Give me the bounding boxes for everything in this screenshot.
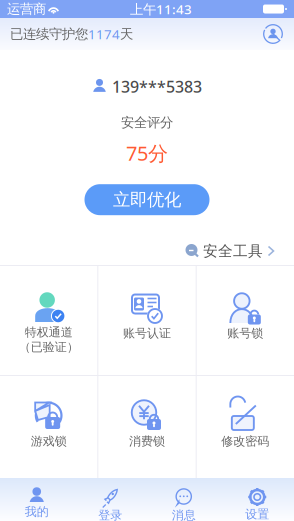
- staticText: （已验证）: [19, 340, 79, 354]
- staticText: 1174: [88, 25, 120, 43]
- staticText: 账号锁: [227, 326, 263, 341]
- button[interactable]: 账号认证: [98, 266, 196, 375]
- button[interactable]: 我的: [0, 478, 73, 521]
- button[interactable]: 消费锁: [98, 376, 196, 478]
- button[interactable]: 特权通道: [0, 266, 97, 375]
- staticText: 天: [120, 26, 133, 42]
- staticText: 安全评分: [121, 114, 173, 131]
- button[interactable]: 安全工具: [0, 242, 294, 265]
- staticText: 已连续守护您: [10, 26, 88, 42]
- staticText: 消息: [172, 508, 196, 521]
- staticText: 75分: [126, 140, 168, 166]
- staticText: 我的: [25, 504, 49, 519]
- staticText: 设置: [245, 507, 269, 521]
- button[interactable]: 消息: [147, 478, 220, 521]
- staticText: 消费锁: [129, 434, 165, 449]
- staticText: 运营商: [7, 1, 46, 17]
- button[interactable]: 游戏锁: [0, 376, 97, 478]
- staticText: 账号认证: [123, 326, 171, 341]
- button[interactable]: 账号锁: [197, 266, 294, 375]
- button[interactable]: 个人中心: [262, 23, 284, 45]
- staticText: 特权通道: [25, 325, 73, 340]
- staticText: 立即优化: [113, 189, 181, 210]
- button[interactable]: 设置: [220, 478, 294, 521]
- staticText: 139***5383: [112, 76, 202, 97]
- staticText: 登录: [98, 508, 122, 521]
- staticText: 游戏锁: [31, 434, 67, 449]
- button[interactable]: 修改密码: [197, 376, 294, 478]
- staticText: 上午11:43: [130, 0, 192, 18]
- button[interactable]: 立即优化: [84, 184, 209, 215]
- staticText: 修改密码: [221, 434, 269, 449]
- staticText: 安全工具: [203, 242, 263, 260]
- button[interactable]: 登录: [73, 478, 147, 521]
